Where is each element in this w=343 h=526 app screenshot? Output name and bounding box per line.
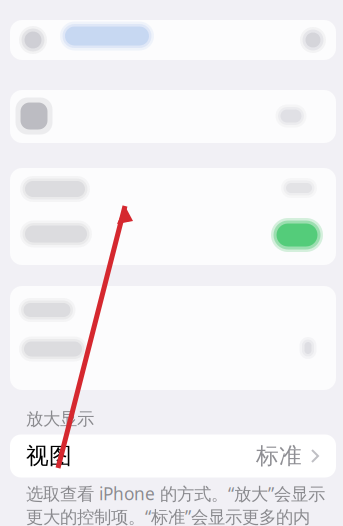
staticText: 标准 xyxy=(256,442,302,470)
staticText: 放大显示 xyxy=(26,408,94,430)
staticText: 视图 xyxy=(26,442,72,470)
button[interactable]: 视图 xyxy=(10,434,336,477)
staticText: 选取查看 iPhone 的方式。“放大”会显示更大的控制项。“标准”会显示更多的… xyxy=(26,482,325,526)
